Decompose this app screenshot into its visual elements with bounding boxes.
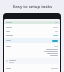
button[interactable] bbox=[4, 44, 60, 48]
button[interactable] bbox=[4, 49, 60, 56]
button[interactable]: Easy to setup tasks bbox=[0, 0, 64, 13]
button[interactable] bbox=[5, 58, 59, 64]
staticText: Easy to setup tasks bbox=[13, 4, 52, 10]
button[interactable] bbox=[4, 25, 60, 29]
button[interactable]: Apply bbox=[4, 38, 60, 43]
button[interactable] bbox=[4, 21, 60, 24]
button[interactable] bbox=[4, 66, 60, 70]
button[interactable] bbox=[4, 33, 60, 37]
button[interactable] bbox=[4, 29, 60, 33]
button[interactable]: Apply bbox=[52, 40, 58, 42]
